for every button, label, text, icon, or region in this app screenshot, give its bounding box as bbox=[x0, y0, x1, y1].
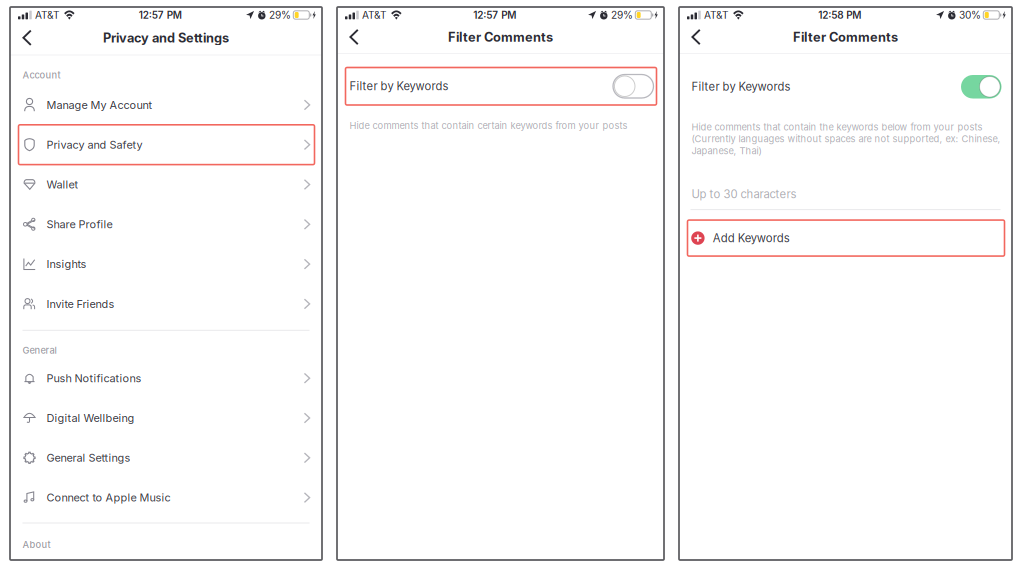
staticText: AT&T bbox=[362, 9, 387, 21]
staticText: Filter by Keywords bbox=[691, 80, 790, 94]
staticText: AT&T bbox=[704, 9, 729, 21]
staticText: Up to 30 characters bbox=[691, 187, 796, 201]
button[interactable]: Filter by Keywords bbox=[679, 68, 1012, 105]
staticText: Privacy and Safety bbox=[46, 138, 142, 151]
button[interactable]: Digital Wellbeing bbox=[10, 398, 322, 438]
staticText: Add Keywords bbox=[713, 231, 790, 245]
staticText: About bbox=[22, 539, 50, 550]
staticText: Account bbox=[22, 69, 60, 81]
button[interactable]: Invite Friends bbox=[10, 284, 322, 324]
staticText: 29% bbox=[269, 9, 291, 21]
button[interactable]: Wallet bbox=[10, 165, 322, 204]
staticText: Filter Comments bbox=[448, 29, 553, 45]
button[interactable]: Insights bbox=[10, 244, 322, 284]
staticText: Digital Wellbeing bbox=[46, 411, 134, 425]
button[interactable]: Connect to Apple Music bbox=[10, 478, 322, 517]
staticText: General bbox=[22, 345, 56, 356]
button[interactable]: Back bbox=[10, 24, 42, 52]
staticText: Push Notifications bbox=[46, 372, 141, 385]
staticText: AT&T bbox=[35, 9, 60, 21]
staticText: (Currently languages without spaces are … bbox=[691, 133, 1000, 145]
staticText: Privacy and Settings bbox=[103, 30, 229, 45]
button[interactable]: Manage My Account bbox=[10, 85, 322, 125]
staticText: Japanese, Thai) bbox=[691, 145, 761, 156]
staticText: 30% bbox=[959, 9, 981, 21]
button[interactable]: Add Keywords bbox=[679, 220, 1012, 256]
staticText: General Settings bbox=[46, 451, 130, 464]
button[interactable]: Filter by Keywords bbox=[337, 67, 664, 105]
staticText: Hide comments that contain the keywords … bbox=[691, 121, 982, 133]
button[interactable]: Privacy and Safety bbox=[10, 125, 322, 165]
staticText: Wallet bbox=[46, 178, 78, 191]
staticText: 29% bbox=[611, 9, 633, 21]
staticText: Filter by Keywords bbox=[349, 79, 448, 93]
button[interactable]: General Settings bbox=[10, 438, 322, 478]
staticText: Filter Comments bbox=[793, 29, 898, 45]
staticText: 12:57 PM bbox=[139, 9, 182, 21]
button[interactable]: Back bbox=[679, 23, 711, 51]
staticText: Share Profile bbox=[46, 218, 112, 231]
staticText: Insights bbox=[46, 257, 86, 271]
staticText: Connect to Apple Music bbox=[46, 491, 170, 504]
staticText: 12:58 PM bbox=[818, 9, 861, 21]
staticText: Invite Friends bbox=[46, 297, 114, 310]
button[interactable]: Back bbox=[337, 23, 369, 51]
staticText: Manage My Account bbox=[46, 98, 152, 111]
staticText: Hide comments that contain certain keywo… bbox=[349, 120, 627, 131]
staticText: 12:57 PM bbox=[473, 9, 516, 21]
button[interactable]: Push Notifications bbox=[10, 358, 322, 398]
button[interactable]: Share Profile bbox=[10, 204, 322, 244]
